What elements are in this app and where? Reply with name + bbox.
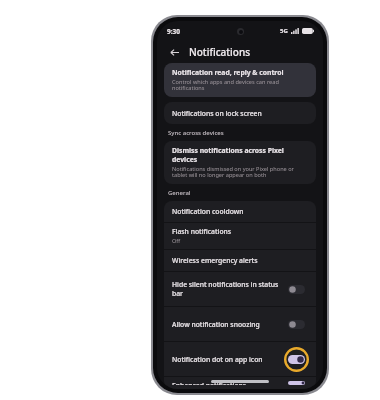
staticText: Flash notifications: [172, 227, 232, 236]
staticText: Wireless emergency alerts: [172, 256, 258, 265]
button[interactable]: Notification cooldown: [164, 201, 316, 389]
staticText: 9:30: [167, 27, 180, 36]
staticText: Notification dot on app icon: [172, 355, 263, 364]
staticText: Notifications on lock screen: [172, 109, 262, 118]
button[interactable]: Wireless emergency alerts: [164, 250, 316, 271]
staticText: Allow notification snoozing: [172, 320, 260, 329]
staticText: Notification read, reply & control: [172, 68, 284, 77]
staticText: Hide silent notifications in status bar: [172, 280, 283, 298]
staticText: Notifications: [189, 45, 251, 59]
button[interactable]: Notification cooldown: [164, 201, 316, 222]
button[interactable]: Dismiss notifications across Pixel devic…: [164, 141, 316, 184]
button[interactable]: Notifications on lock screen: [164, 102, 316, 124]
staticText: Dismiss notifications across Pixel devic…: [172, 146, 308, 164]
staticText: Notifications dismissed on your Pixel ph…: [172, 165, 308, 179]
button[interactable]: Allow notification snoozing: [164, 307, 316, 341]
staticText: General: [168, 189, 191, 197]
button[interactable]: Back: [165, 43, 183, 61]
staticText: Sync across devices: [168, 129, 224, 137]
button[interactable]: Enhanced notifications: [164, 377, 316, 389]
staticText: Notification cooldown: [172, 207, 244, 216]
button[interactable]: Notification dot on app icon: [164, 342, 316, 376]
button[interactable]: Notification read, reply & control: [164, 63, 316, 97]
staticText: 5G: [280, 27, 288, 35]
button[interactable]: Hide silent notifications in status bar: [164, 272, 316, 306]
staticText: Off: [172, 237, 181, 245]
button[interactable]: Flash notifications: [164, 223, 316, 249]
staticText: Enhanced notifications: [172, 381, 247, 385]
staticText: Control which apps and devices can read …: [172, 78, 308, 92]
